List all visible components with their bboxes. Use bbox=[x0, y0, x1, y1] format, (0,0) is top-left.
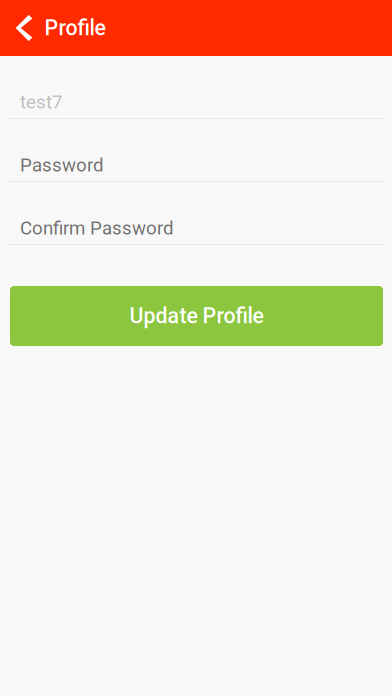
staticText: Profile bbox=[44, 15, 105, 40]
staticText: Password bbox=[20, 154, 104, 176]
staticText: test7 bbox=[20, 91, 62, 113]
button[interactable]: Confirm Password bbox=[9, 182, 383, 245]
button[interactable]: Update Profile bbox=[10, 286, 383, 346]
button[interactable]: test7 bbox=[9, 56, 383, 119]
staticText: Confirm Password bbox=[20, 217, 174, 239]
button[interactable]: Back to Profile bbox=[0, 0, 119, 56]
staticText: Update Profile bbox=[129, 303, 263, 328]
button[interactable]: Password bbox=[9, 119, 383, 182]
